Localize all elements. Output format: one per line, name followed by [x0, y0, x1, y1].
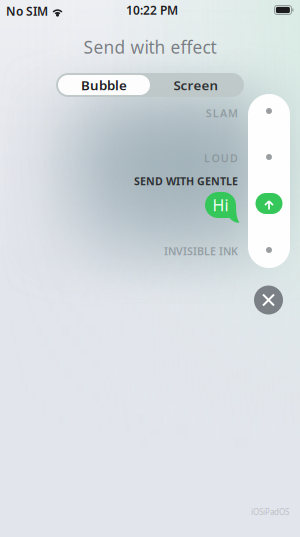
staticText: No SIM [6, 3, 48, 19]
button[interactable]: Screen [150, 75, 242, 95]
staticText: iOSiPadOS [251, 507, 289, 517]
button[interactable]: Bubble [58, 75, 150, 95]
button[interactable]: Close [254, 285, 283, 314]
staticText: Hi [212, 194, 228, 216]
staticText: LOUD [204, 151, 238, 165]
staticText: Bubble [81, 76, 127, 94]
staticText: SLAM [206, 106, 238, 120]
staticText: Send with effect [83, 35, 216, 58]
staticText: 10:22 PM [126, 2, 178, 18]
staticText: INVISIBLE INK [164, 244, 238, 258]
button[interactable]: Send [255, 193, 282, 214]
staticText: SEND WITH GENTLE [134, 174, 238, 188]
staticText: Screen [173, 76, 218, 94]
